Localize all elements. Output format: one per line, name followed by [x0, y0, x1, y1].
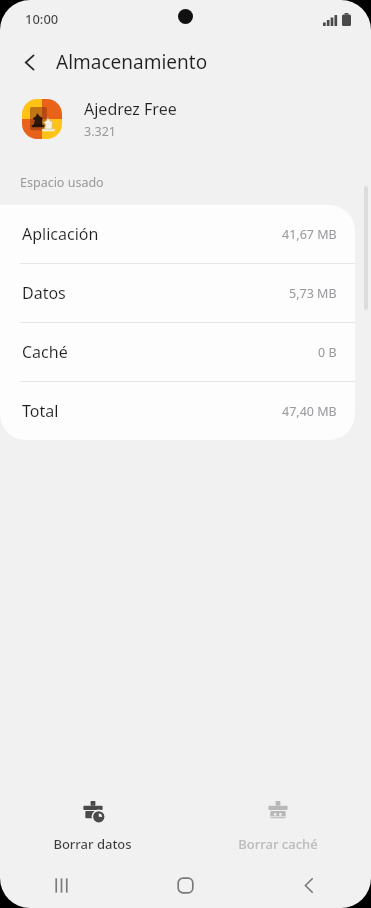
button[interactable]: Caché — [0, 323, 355, 381]
button[interactable]: Borrar caché — [185, 784, 371, 853]
staticText: Datos — [22, 282, 289, 304]
staticText: Ajedrez Free — [84, 98, 177, 120]
staticText: Borrar caché — [238, 835, 318, 853]
button[interactable]: Back — [10, 42, 50, 82]
staticText: Caché — [22, 341, 318, 363]
staticText: Almacenamiento — [56, 49, 208, 75]
staticText: Borrar datos — [53, 835, 132, 853]
staticText: Espacio usado — [20, 174, 104, 191]
staticText: 3.321 — [84, 123, 116, 140]
button[interactable]: Borrar datos — [0, 784, 185, 853]
staticText: 0 B — [318, 344, 337, 361]
button[interactable]: Datos — [0, 264, 355, 322]
staticText: 47,40 MB — [282, 403, 337, 420]
staticText: Aplicación — [22, 223, 282, 245]
staticText: 5,73 MB — [289, 285, 337, 302]
button[interactable]: Back — [247, 862, 371, 908]
staticText: 41,67 MB — [282, 226, 337, 243]
staticText: 10:00 — [25, 10, 59, 28]
button[interactable]: Home — [123, 862, 247, 908]
button[interactable]: Total — [0, 382, 355, 440]
staticText: Total — [22, 400, 282, 422]
button[interactable]: Recent apps — [0, 862, 123, 908]
button[interactable]: Aplicación — [0, 205, 355, 263]
